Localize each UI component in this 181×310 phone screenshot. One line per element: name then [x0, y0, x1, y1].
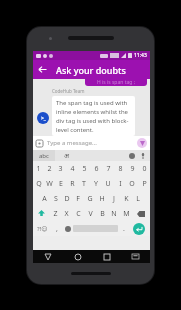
- button[interactable]: T: [78, 176, 90, 191]
- button[interactable]: N: [108, 206, 120, 221]
- staticText: H is is span tag ;: [97, 79, 135, 86]
- staticText: Ask your doubts: [56, 64, 126, 76]
- button[interactable]: Y: [90, 176, 102, 191]
- staticText: .: [123, 224, 125, 234]
- button[interactable]: B: [96, 206, 108, 221]
- button[interactable]: M: [120, 206, 132, 221]
- staticText: 7: [106, 164, 111, 174]
- staticText: U: [105, 179, 111, 189]
- staticText: 6: [94, 164, 99, 174]
- staticText: 11:43: [134, 52, 147, 59]
- button[interactable]: D: [61, 191, 72, 206]
- staticText: The span tag is used with inline element…: [56, 99, 131, 133]
- button[interactable]: The span tag is used with inline element…: [52, 96, 135, 136]
- staticText: R: [70, 179, 75, 189]
- staticText: >_: [41, 115, 46, 122]
- staticText: C: [76, 209, 81, 219]
- button[interactable]: W: [44, 176, 55, 191]
- staticText: N: [111, 209, 117, 219]
- staticText: Y: [94, 179, 98, 189]
- staticText: 0: [142, 164, 147, 174]
- staticText: Q: [36, 179, 42, 189]
- button[interactable]: Voice input: [137, 150, 148, 161]
- button[interactable]: ?!☺: [34, 221, 51, 236]
- button[interactable]: Recents: [92, 250, 121, 263]
- staticText: O: [129, 179, 135, 189]
- staticText: H: [99, 194, 105, 204]
- staticText: T: [82, 179, 86, 189]
- button[interactable]: Shift: [33, 206, 50, 221]
- button[interactable]: 2: [44, 161, 55, 176]
- staticText: P: [142, 179, 147, 189]
- button[interactable]: S: [50, 191, 61, 206]
- button[interactable]: 8: [114, 161, 126, 176]
- button[interactable]: 0: [138, 161, 150, 176]
- staticText: B: [100, 209, 105, 219]
- staticText: D: [64, 194, 70, 204]
- button[interactable]: 6: [90, 161, 102, 176]
- button[interactable]: 3: [55, 161, 66, 176]
- button[interactable]: E: [55, 176, 66, 191]
- button[interactable]: Back: [33, 250, 63, 263]
- button[interactable]: ,: [51, 221, 62, 236]
- button[interactable]: Q: [33, 176, 44, 191]
- button[interactable]: F: [72, 191, 84, 206]
- button[interactable]: Send: [137, 138, 147, 148]
- button[interactable]: O: [126, 176, 138, 191]
- staticText: 8: [118, 164, 123, 174]
- button[interactable]: Home: [63, 250, 92, 263]
- staticText: ,: [56, 224, 58, 234]
- button[interactable]: L: [132, 191, 144, 206]
- staticText: W: [46, 179, 53, 189]
- staticText: G: [87, 194, 93, 204]
- staticText: V: [88, 209, 93, 219]
- button[interactable]: Enter: [133, 223, 145, 235]
- button[interactable]: Backspace: [132, 206, 150, 221]
- button[interactable]: G: [84, 191, 96, 206]
- staticText: 2: [47, 164, 52, 174]
- button[interactable]: J: [108, 191, 120, 206]
- staticText: M: [123, 209, 130, 219]
- button[interactable]: R: [66, 176, 78, 191]
- staticText: 4: [70, 164, 75, 174]
- button[interactable]: V: [84, 206, 96, 221]
- button[interactable]: Attach image: [33, 136, 150, 150]
- staticText: Z: [53, 209, 58, 219]
- staticText: अ: [64, 151, 69, 160]
- button[interactable]: K: [120, 191, 132, 206]
- button[interactable]: 9: [126, 161, 138, 176]
- button[interactable]: 4: [66, 161, 78, 176]
- button[interactable]: A: [39, 191, 50, 206]
- button[interactable]: Emoji: [62, 221, 73, 236]
- staticText: K: [124, 194, 129, 204]
- button[interactable]: 5: [78, 161, 90, 176]
- button[interactable]: Z: [50, 206, 61, 221]
- button[interactable]: abc: [33, 150, 55, 161]
- staticText: J: [113, 194, 115, 204]
- button[interactable]: अ: [55, 150, 77, 161]
- button[interactable]: I: [114, 176, 126, 191]
- staticText: 3: [58, 164, 63, 174]
- staticText: 5: [82, 164, 87, 174]
- button[interactable]: P: [138, 176, 150, 191]
- staticText: F: [76, 194, 80, 204]
- button[interactable]: Back: [33, 60, 52, 79]
- staticText: X: [64, 209, 69, 219]
- staticText: CodeHub Team: [52, 88, 85, 94]
- button[interactable]: U: [102, 176, 114, 191]
- staticText: L: [136, 194, 140, 204]
- button[interactable]: 7: [102, 161, 114, 176]
- button[interactable]: C: [72, 206, 84, 221]
- button[interactable]: X: [61, 206, 72, 221]
- button[interactable]: 1: [33, 161, 44, 176]
- button[interactable]: Switch keyboard: [121, 250, 150, 263]
- button[interactable]: H is is span tag ;: [85, 76, 147, 86]
- button[interactable]: H: [96, 191, 108, 206]
- staticText: I: [119, 179, 122, 189]
- button[interactable]: Settings: [126, 150, 137, 161]
- staticText: E: [59, 179, 63, 189]
- other: Attach image: [36, 140, 43, 147]
- staticText: Type a message...: [47, 139, 97, 147]
- button[interactable]: .: [118, 221, 129, 236]
